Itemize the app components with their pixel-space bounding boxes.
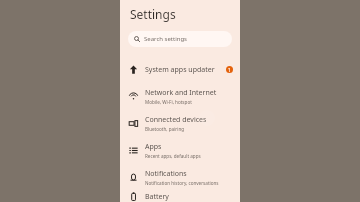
staticText: Connected devices xyxy=(145,115,207,125)
staticText: Search settings xyxy=(144,35,187,43)
staticText: 1 xyxy=(228,67,231,73)
staticText: Notification history, conversations xyxy=(145,180,219,186)
staticText: Bluetooth, pairing xyxy=(145,126,185,132)
button[interactable]: System apps updater xyxy=(120,56,240,83)
other: Search xyxy=(134,36,140,42)
button[interactable]: Network and Internet xyxy=(120,83,240,110)
button[interactable]: Search xyxy=(128,31,232,47)
staticText: Recent apps, default apps xyxy=(145,153,201,159)
staticText: Apps xyxy=(145,142,162,152)
button[interactable]: Battery xyxy=(120,191,240,202)
staticText: System apps updater xyxy=(145,65,215,75)
button[interactable]: Notifications xyxy=(120,164,240,191)
button[interactable]: Connected devices xyxy=(120,110,240,137)
staticText: Settings xyxy=(130,6,176,22)
staticText: Network and Internet xyxy=(145,88,217,98)
staticText: Battery xyxy=(145,192,169,202)
staticText: Notifications xyxy=(145,169,187,179)
staticText: Mobile, Wi-Fi, hotspot xyxy=(145,99,192,105)
button[interactable]: Apps xyxy=(120,137,240,164)
